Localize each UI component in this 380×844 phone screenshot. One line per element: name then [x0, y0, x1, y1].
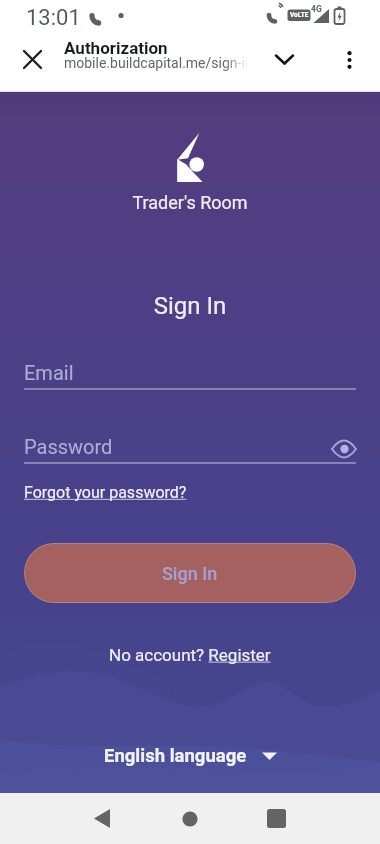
button[interactable] — [252, 793, 300, 844]
staticText: 4G — [311, 4, 322, 14]
button[interactable] — [16, 37, 48, 82]
staticText: Password — [24, 435, 113, 458]
staticText: Authorization — [64, 38, 168, 58]
staticText: Sign In — [0, 292, 380, 320]
button[interactable]: Sign In — [24, 543, 356, 603]
staticText: 13:01 — [26, 5, 81, 31]
staticText: Trader's Room — [0, 192, 380, 213]
button[interactable]: No account? Register — [109, 645, 271, 665]
staticText: English language — [104, 745, 247, 767]
staticText: VoLTE — [290, 11, 309, 19]
staticText: Forgot your password? — [24, 483, 187, 502]
button[interactable]: Password — [24, 433, 356, 468]
staticText: Email — [24, 361, 74, 384]
staticText: mobile.buildcapital.me/sign-in — [64, 55, 248, 71]
button[interactable] — [334, 37, 364, 82]
button[interactable]: Email — [24, 358, 356, 394]
button[interactable]: Forgot your password? — [24, 483, 187, 502]
staticText: No account? Register — [109, 645, 271, 665]
button[interactable] — [326, 437, 362, 461]
button[interactable] — [266, 37, 302, 82]
staticText: Sign In — [162, 563, 218, 584]
button[interactable] — [166, 793, 214, 844]
button[interactable] — [78, 793, 126, 844]
button[interactable]: English language — [104, 745, 277, 767]
